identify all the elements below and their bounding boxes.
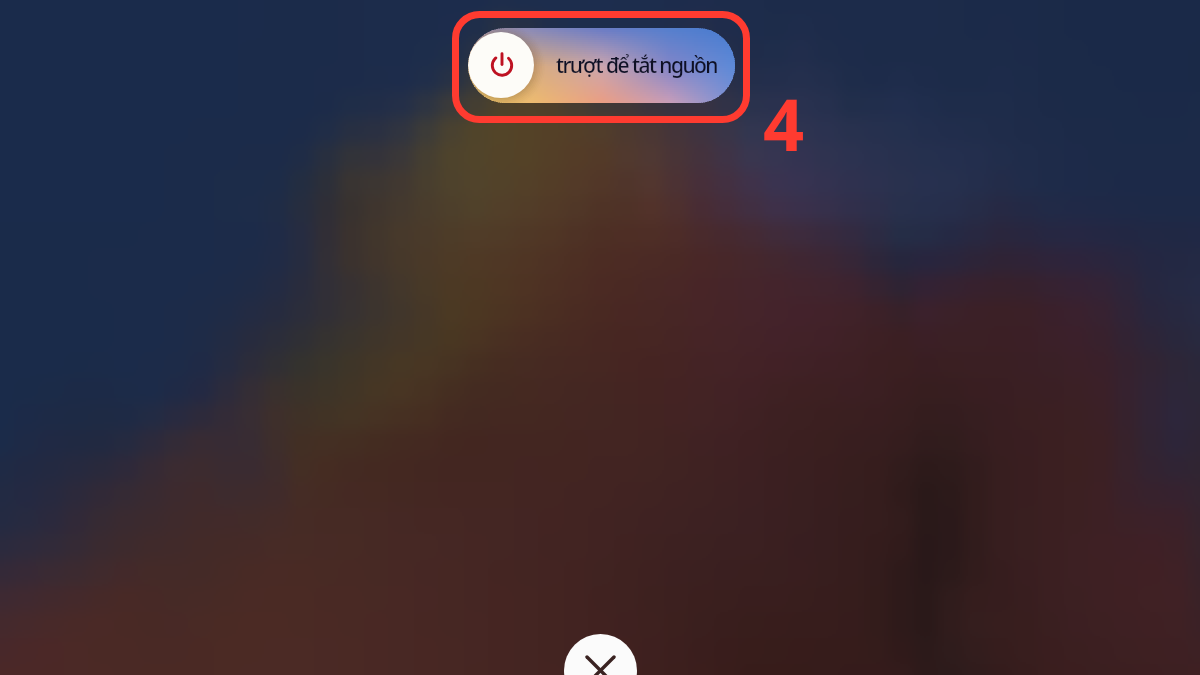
other: Power off [468, 32, 534, 98]
button[interactable]: trượt để tắt nguồn [468, 28, 735, 103]
staticText: trượt để tắt nguồn [556, 51, 717, 80]
staticText: 4 [763, 74, 805, 172]
button[interactable]: Cancel [564, 634, 637, 675]
